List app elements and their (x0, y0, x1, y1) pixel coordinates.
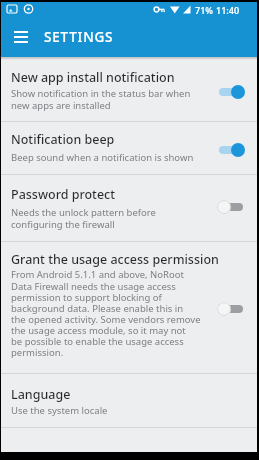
staticText: Show notification in the status bar when… (11, 87, 211, 112)
staticText: Beep sound when a notification is shown (11, 151, 211, 164)
staticText: New app install notification (11, 69, 175, 86)
button[interactable] (1, 372, 257, 425)
button[interactable] (1, 57, 257, 119)
staticText: Use the system locale (11, 404, 211, 417)
button[interactable] (1, 120, 257, 172)
button[interactable] (217, 85, 246, 99)
button[interactable] (1, 173, 257, 239)
button[interactable] (1, 240, 257, 371)
staticText: Notification beep (11, 131, 115, 148)
staticText: From Android 5.1.1 and above, NoRoot Dat… (11, 268, 211, 359)
button[interactable] (217, 143, 246, 157)
button[interactable] (217, 302, 246, 316)
staticText: Needs the unlock pattern before configur… (11, 206, 211, 231)
staticText: Grant the usage access permission (11, 251, 219, 268)
staticText: Password protect (11, 186, 116, 203)
staticText: Language (11, 386, 71, 403)
staticText: SETTINGS (44, 28, 114, 46)
staticText: 11:40 (216, 4, 240, 16)
staticText: 71% (195, 4, 213, 16)
button[interactable] (9, 27, 37, 53)
button[interactable] (217, 200, 246, 214)
